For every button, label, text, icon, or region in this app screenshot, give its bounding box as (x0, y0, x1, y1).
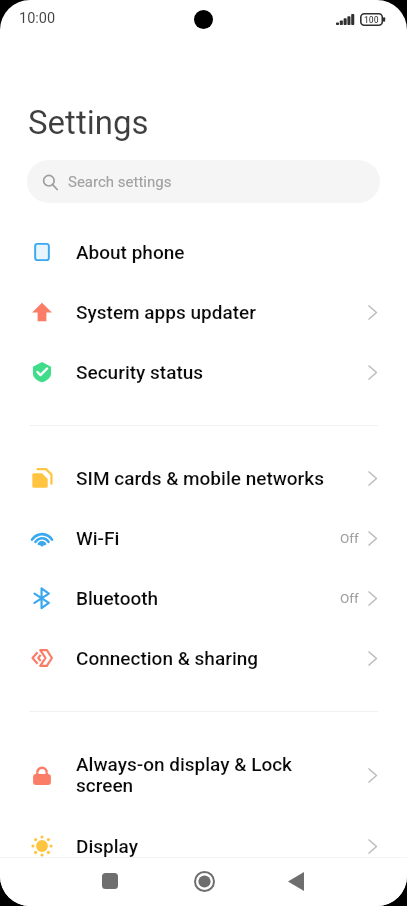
staticText: System apps updater (76, 301, 256, 323)
staticText: Search settings (68, 173, 172, 191)
staticText: 100 (364, 15, 379, 25)
button[interactable]: Recent apps (80, 857, 140, 905)
button[interactable]: Search settings (27, 160, 380, 203)
button[interactable]: Always-on display & Lock screen (0, 745, 407, 805)
button[interactable]: Connection & sharing (0, 628, 407, 688)
staticText: Bluetooth (76, 587, 159, 609)
button[interactable]: Security status (0, 342, 407, 402)
button[interactable]: Home (174, 857, 234, 905)
staticText: 10:00 (19, 10, 56, 27)
button[interactable]: SIM cards & mobile networks (0, 448, 407, 508)
staticText: Off (340, 530, 359, 546)
staticText: Security status (76, 361, 204, 383)
staticText: SIM cards & mobile networks (76, 467, 324, 489)
staticText: Settings (28, 103, 149, 142)
staticText: Always-on display & Lock screen (76, 753, 306, 797)
button[interactable]: Wi-Fi (0, 508, 407, 568)
staticText: Off (340, 590, 359, 606)
staticText: Display (76, 835, 138, 857)
button[interactable]: Back (266, 857, 326, 905)
staticText: About phone (76, 241, 185, 263)
button[interactable]: Bluetooth (0, 568, 407, 628)
button[interactable]: System apps updater (0, 282, 407, 342)
staticText: Wi-Fi (76, 527, 120, 549)
staticText: Connection & sharing (76, 647, 259, 669)
button[interactable]: About phone (0, 222, 407, 282)
button[interactable]: Display (0, 816, 407, 876)
